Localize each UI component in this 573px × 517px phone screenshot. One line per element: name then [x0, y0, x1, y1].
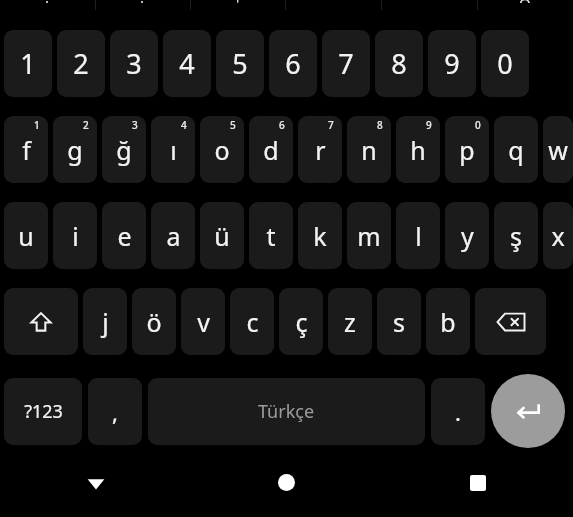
button[interactable]: e — [102, 202, 146, 269]
staticText: 1 — [20, 45, 36, 82]
button[interactable]: ı — [151, 116, 195, 183]
button[interactable]: Hide keyboard — [0, 448, 191, 517]
staticText: y — [461, 219, 474, 253]
staticText: z — [344, 305, 356, 339]
button[interactable]: o — [200, 116, 244, 183]
staticText: 2 — [73, 45, 89, 82]
staticText: 1 — [34, 118, 40, 132]
button[interactable]: 8 — [375, 30, 423, 97]
button[interactable]: . — [431, 378, 485, 445]
button[interactable]: 0 — [481, 30, 529, 97]
button[interactable]: y — [445, 202, 489, 269]
staticText: . — [455, 397, 461, 427]
button[interactable]: 5 — [216, 30, 264, 97]
staticText: h — [410, 133, 426, 167]
button[interactable]: m — [347, 202, 391, 269]
button[interactable]: ğ — [102, 116, 146, 183]
button[interactable]: : — [95, 0, 190, 10]
button[interactable]: 2 — [57, 30, 105, 97]
button[interactable]: j — [83, 288, 127, 355]
staticText: u — [18, 219, 34, 253]
staticText: 7 — [328, 118, 334, 132]
button[interactable]: , — [88, 378, 142, 445]
button[interactable]: ç — [279, 288, 323, 355]
button[interactable]: l — [396, 202, 440, 269]
button[interactable]: u — [4, 202, 48, 269]
staticText: m — [357, 219, 381, 253]
button[interactable]: , — [381, 0, 477, 10]
button[interactable]: ş — [494, 202, 538, 269]
button[interactable]: ö — [132, 288, 176, 355]
staticText: 5 — [232, 45, 248, 82]
button[interactable]: 9 — [428, 30, 476, 97]
button[interactable]: i — [53, 202, 97, 269]
staticText: ş — [510, 219, 522, 253]
staticText: 8 — [377, 118, 383, 132]
staticText: : — [45, 0, 50, 3]
button[interactable]: n — [347, 116, 391, 183]
staticText: p — [459, 133, 475, 167]
staticText: l — [415, 219, 422, 253]
staticText: e — [117, 219, 132, 253]
button[interactable]: r — [298, 116, 342, 183]
staticText: 9 — [444, 45, 460, 82]
button[interactable]: Recent apps — [382, 448, 573, 517]
button[interactable]: f — [4, 116, 48, 183]
button[interactable]: Home — [191, 448, 382, 517]
staticText: j — [102, 305, 109, 339]
button[interactable]: 7 — [322, 30, 370, 97]
button[interactable]: Türkçe — [148, 378, 425, 445]
staticText: : — [140, 0, 145, 3]
button[interactable]: Shift — [4, 288, 78, 355]
staticText: 5 — [230, 118, 236, 132]
button[interactable]: 1 — [4, 30, 52, 97]
staticText: d — [263, 133, 279, 167]
button[interactable]: h — [396, 116, 440, 183]
button[interactable]: g — [53, 116, 97, 183]
staticText: 6 — [279, 118, 285, 132]
staticText: k — [313, 219, 327, 253]
button[interactable]: ' — [190, 0, 285, 10]
staticText: c — [246, 305, 259, 339]
button[interactable]: w — [543, 116, 573, 183]
staticText: ğ — [116, 133, 132, 167]
button[interactable]: z — [328, 288, 372, 355]
button[interactable]: c — [230, 288, 274, 355]
button[interactable]: b — [426, 288, 470, 355]
staticText: 6 — [285, 45, 301, 82]
staticText: a — [166, 219, 181, 253]
button[interactable]: Backspace — [475, 288, 546, 355]
staticText: ö — [146, 305, 162, 339]
staticText: ?123 — [24, 399, 63, 424]
button[interactable]: : — [0, 0, 95, 10]
button[interactable]: x — [543, 202, 573, 269]
button[interactable]: Enter — [491, 374, 565, 448]
staticText: o — [214, 133, 230, 167]
staticText: r — [315, 133, 326, 167]
button[interactable]: q — [494, 116, 538, 183]
staticText: b — [440, 305, 456, 339]
button[interactable]: Q — [477, 0, 573, 10]
button[interactable]: v — [181, 288, 225, 355]
staticText: 3 — [132, 118, 138, 132]
button[interactable]: t — [249, 202, 293, 269]
staticText: 2 — [83, 118, 89, 132]
staticText: s — [393, 305, 405, 339]
button[interactable]: 6 — [269, 30, 317, 97]
button[interactable]: p — [445, 116, 489, 183]
button[interactable]: ü — [200, 202, 244, 269]
staticText: i — [72, 219, 79, 253]
button[interactable]: k — [298, 202, 342, 269]
staticText: 4 — [179, 45, 195, 82]
button[interactable]: 3 — [110, 30, 158, 97]
button[interactable]: d — [249, 116, 293, 183]
button[interactable]: a — [151, 202, 195, 269]
button[interactable]: s — [377, 288, 421, 355]
button[interactable]: 4 — [163, 30, 211, 97]
button[interactable]: ?123 — [4, 378, 82, 445]
staticText: q — [508, 133, 524, 167]
staticText: f — [22, 133, 31, 167]
button[interactable]: . — [285, 0, 381, 10]
